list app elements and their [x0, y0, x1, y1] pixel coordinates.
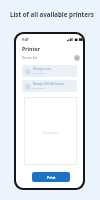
- staticText: Print: [47, 175, 56, 180]
- staticText: Device list: [22, 56, 37, 60]
- button[interactable]: Print: [32, 172, 70, 182]
- staticText: List of all available printers: [10, 10, 94, 18]
- staticText: Manage 2020 Whitepaper: [33, 82, 65, 86]
- staticText: Connected: [33, 72, 45, 75]
- staticText: Connected: [33, 87, 45, 90]
- staticText: 9:41: [22, 37, 29, 42]
- staticText: Document: [43, 131, 59, 135]
- staticText: Printer: [22, 45, 41, 52]
- button[interactable]: Manage 2020 Whitepaper: [22, 80, 77, 92]
- button[interactable]: Printer options: [75, 56, 79, 60]
- staticText: Manage router: [33, 67, 52, 71]
- button[interactable]: Manage router: [22, 65, 77, 77]
